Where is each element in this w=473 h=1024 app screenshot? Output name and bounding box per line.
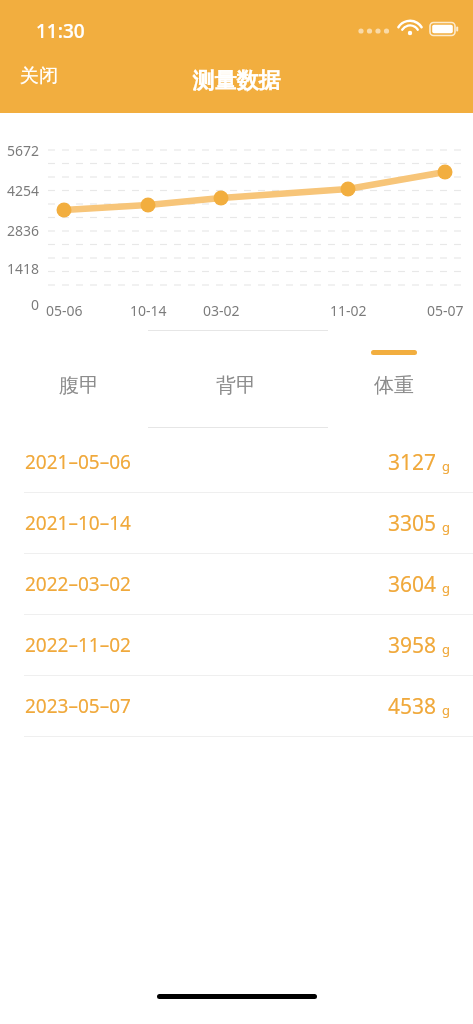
button[interactable]: 2021–05–06	[0, 432, 473, 493]
staticText: 05-06	[46, 301, 83, 320]
staticText: 背甲	[216, 373, 256, 398]
staticText: 11:30	[36, 18, 85, 44]
staticText: g	[442, 457, 450, 475]
staticText: g	[442, 518, 450, 536]
staticText: 2021–10–14	[25, 510, 131, 536]
staticText: 2023–05–07	[25, 693, 131, 719]
button[interactable]: 腹甲	[0, 325, 157, 432]
staticText: 4538	[388, 692, 437, 721]
button[interactable]: 关闭	[8, 58, 70, 94]
staticText: 4254	[7, 181, 40, 200]
staticText: 关闭	[20, 64, 58, 88]
staticText: 03-02	[203, 301, 240, 320]
staticText: 2022–11–02	[25, 632, 131, 658]
staticText: 05-07	[427, 301, 464, 320]
staticText: 3604	[388, 570, 437, 599]
staticText: g	[442, 640, 450, 658]
button[interactable]: 2021–10–14	[0, 493, 473, 554]
staticText: 3958	[388, 631, 437, 660]
staticText: 3127	[388, 448, 437, 477]
button[interactable]: 2022–11–02	[0, 615, 473, 676]
staticText: 3305	[388, 509, 437, 538]
staticText: 10-14	[130, 301, 167, 320]
staticText: 2021–05–06	[25, 449, 131, 475]
button[interactable]: 2023–05–07	[0, 676, 473, 737]
staticText: 1418	[7, 259, 40, 278]
staticText: 5672	[7, 141, 40, 160]
button[interactable]: 体重	[315, 325, 473, 432]
staticText: 测量数据	[0, 67, 473, 95]
staticText: 体重	[374, 373, 414, 398]
staticText: 腹甲	[59, 373, 99, 398]
staticText: 2022–03–02	[25, 571, 131, 597]
staticText: g	[442, 579, 450, 597]
staticText: 0	[31, 295, 40, 314]
staticText: 11-02	[330, 301, 367, 320]
button[interactable]: 2022–03–02	[0, 554, 473, 615]
button[interactable]: 背甲	[157, 325, 315, 432]
staticText: g	[442, 701, 450, 719]
staticText: 2836	[7, 221, 40, 240]
